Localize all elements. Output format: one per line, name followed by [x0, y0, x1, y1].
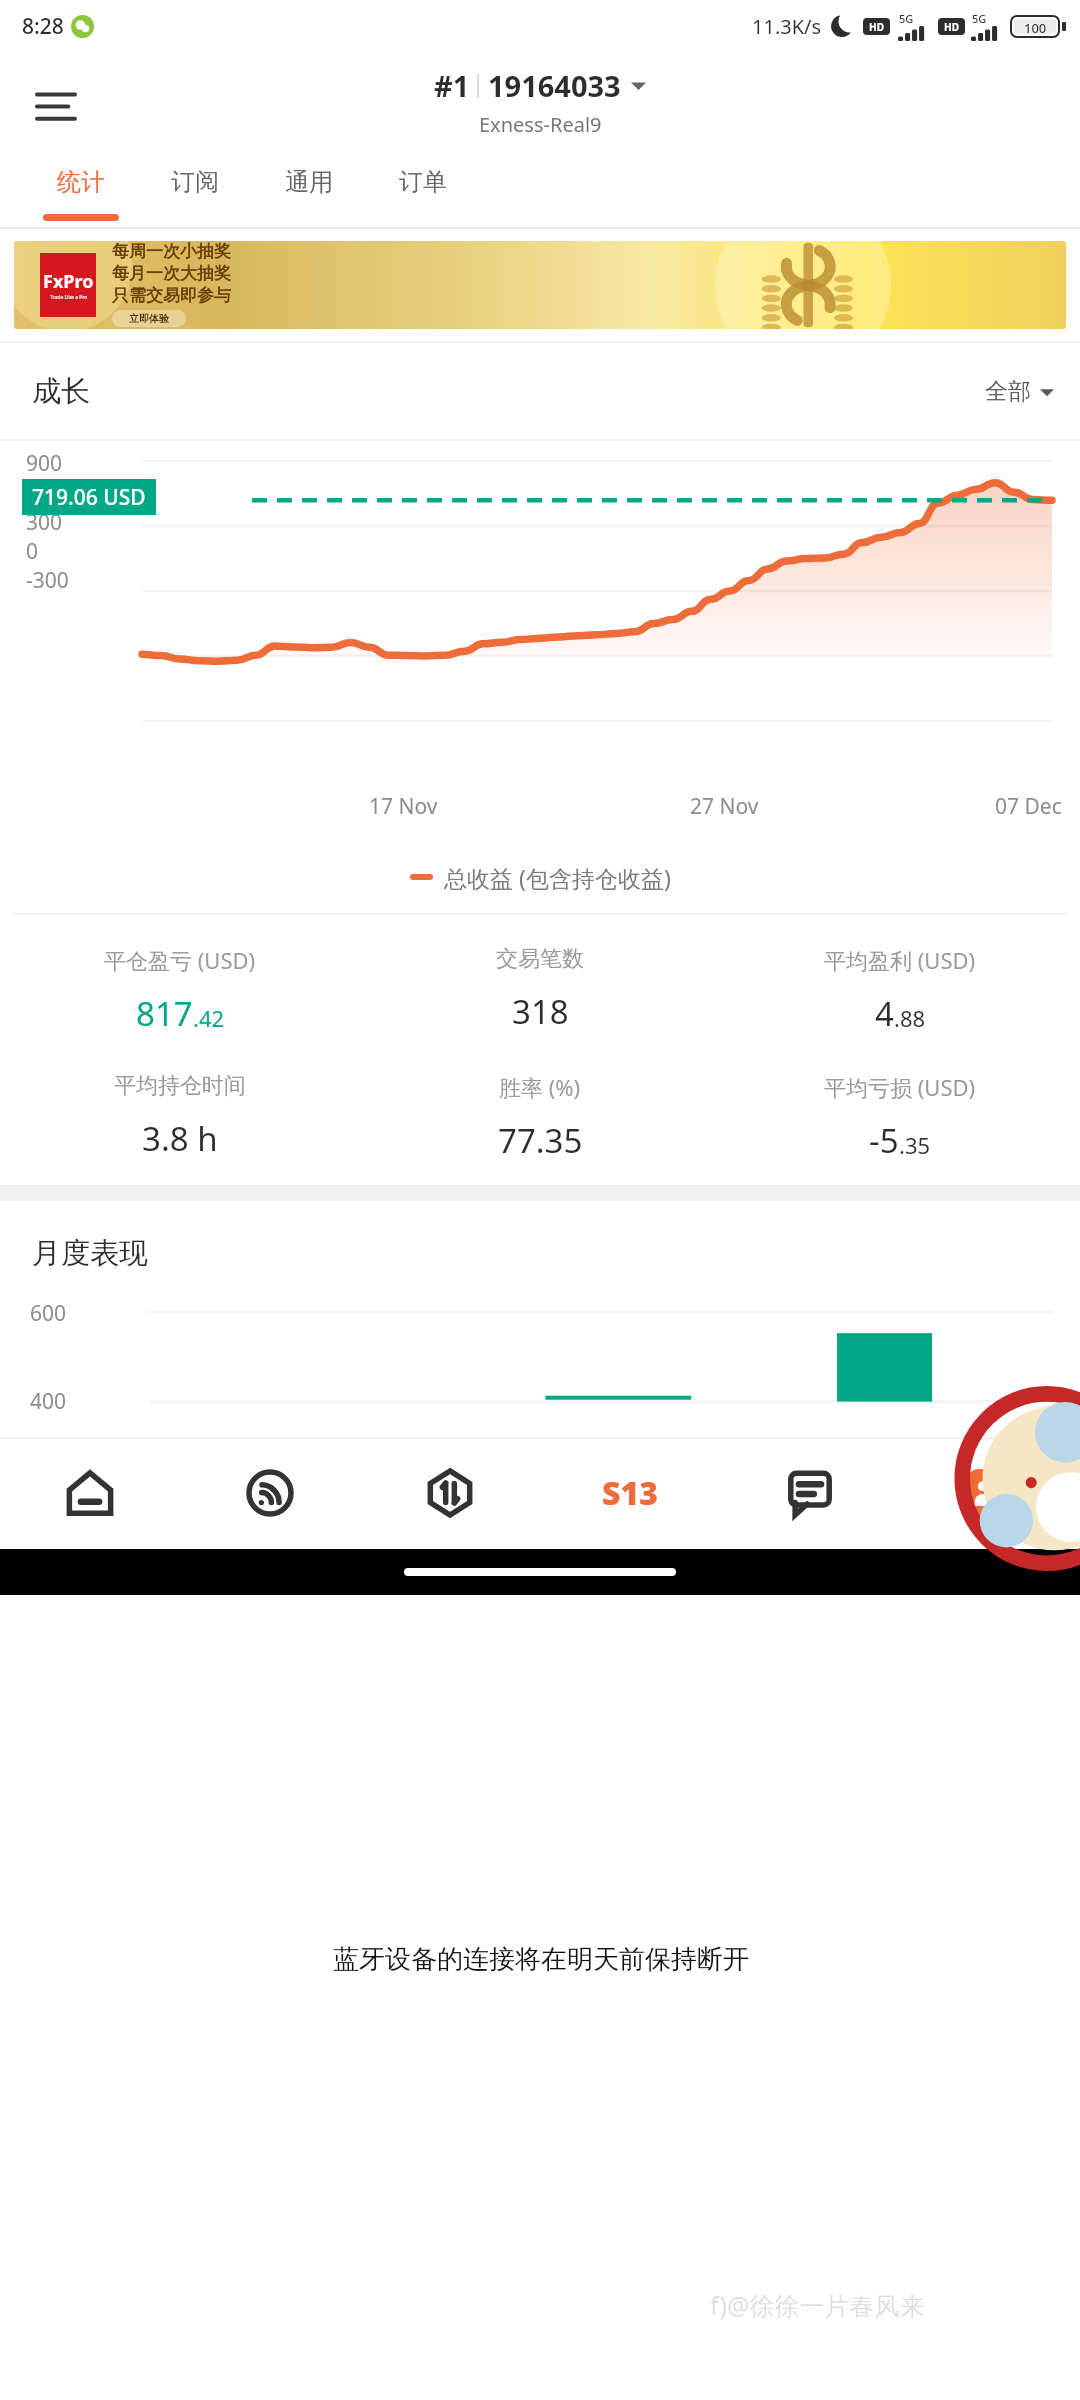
button[interactable]: Menu	[26, 75, 86, 135]
button[interactable]: 全部	[985, 377, 1054, 406]
staticText: S13	[602, 1471, 658, 1515]
staticText: 318	[512, 989, 569, 1034]
staticText: 平均持仓时间	[114, 1072, 246, 1100]
button[interactable]: FxPro	[14, 241, 1066, 329]
staticText: #1	[434, 66, 470, 105]
staticText: Trade Like a Pro	[50, 294, 88, 301]
button[interactable]: Trade	[360, 1437, 540, 1549]
staticText: 100	[1024, 19, 1047, 34]
staticText: f)@徐徐一片春风来	[710, 2288, 925, 2322]
staticText: 3.8 h	[142, 1116, 218, 1161]
staticText: 4	[875, 991, 894, 1036]
staticText: 600	[30, 1299, 67, 1328]
staticText: Exness-Real9	[479, 111, 602, 138]
staticText: 成长	[32, 373, 90, 410]
staticText: 27 Nov	[690, 792, 759, 821]
button[interactable]: Home	[0, 1437, 180, 1549]
staticText: .35	[899, 1130, 931, 1160]
staticText: 17 Nov	[369, 792, 438, 821]
staticText: .88	[894, 1003, 926, 1033]
staticText: 每周一次小抽奖	[112, 241, 231, 262]
staticText: 订单	[399, 167, 447, 197]
staticText: 只需交易即参与	[112, 285, 231, 306]
staticText: 817	[136, 991, 193, 1036]
staticText: 通用	[285, 167, 333, 197]
button[interactable]: S13	[540, 1437, 720, 1549]
staticText: 5G	[972, 11, 987, 26]
staticText: 900	[26, 449, 63, 478]
staticText: 总收益 (包含持仓收益)	[444, 862, 671, 893]
button[interactable]: Signals	[180, 1437, 360, 1549]
staticText: 400	[30, 1387, 67, 1416]
staticText: 07 Dec	[995, 792, 1062, 821]
staticText: 19164033	[488, 66, 621, 105]
button[interactable]: Messages	[720, 1437, 900, 1549]
button[interactable]: 通用	[252, 157, 366, 229]
staticText: 0	[26, 537, 39, 566]
button[interactable]: #1	[434, 66, 646, 105]
staticText: HD	[869, 20, 884, 34]
staticText: .42	[193, 1003, 225, 1033]
button[interactable]: 订阅	[138, 157, 252, 229]
staticText: 719.06 USD	[32, 483, 146, 512]
staticText: 77.35	[498, 1118, 583, 1163]
staticText: 订阅	[171, 167, 219, 197]
button[interactable]: 订单	[366, 157, 480, 229]
staticText: FxPro	[43, 269, 94, 294]
staticText: 平均亏损 (USD)	[824, 1072, 976, 1102]
staticText: HD	[944, 20, 959, 34]
staticText: 600	[26, 478, 63, 507]
staticText: -300	[26, 566, 69, 595]
staticText: 交易笔数	[496, 945, 584, 973]
staticText: 11.3K/s	[752, 13, 822, 40]
staticText: -5	[869, 1118, 899, 1163]
staticText: 300	[26, 508, 63, 537]
staticText: 月度表现	[32, 1235, 148, 1272]
staticText: 平均盈利 (USD)	[824, 945, 976, 975]
staticText: 胜率 (%)	[499, 1072, 581, 1102]
button[interactable]: Profile	[900, 1437, 1080, 1549]
staticText: 统计	[57, 167, 105, 197]
staticText: 平仓盈亏 (USD)	[104, 945, 256, 975]
staticText: 每月一次大抽奖	[112, 263, 231, 284]
staticText: 5G	[899, 11, 914, 26]
staticText: 立即体验	[129, 312, 169, 325]
staticText: 蓝牙设备的连接将在明天前保持断开	[333, 1943, 749, 1976]
button[interactable]: 统计	[24, 157, 138, 229]
staticText: 全部	[985, 377, 1031, 406]
staticText: 8:28	[22, 12, 64, 41]
